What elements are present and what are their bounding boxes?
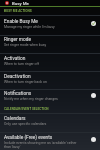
other: Busy Me: [5, 1, 9, 5]
staticText: Busy Me: [12, 1, 29, 6]
staticText: Notifications: [4, 91, 32, 97]
staticText: Ringer mode: [4, 37, 32, 43]
button[interactable]: Activation: [0, 54, 100, 72]
staticText: Activation: [4, 56, 26, 62]
staticText: Available (Free) events: [4, 135, 53, 141]
staticText: Set ringer mode when busy: [4, 43, 47, 47]
staticText: When to turn ringer back on: [4, 80, 47, 84]
staticText: CALENDAR/EVENT SELECTION: [4, 107, 49, 111]
staticText: BUSY ME ACTIONS: [4, 9, 32, 13]
button[interactable]: Deactivation: [0, 72, 100, 90]
staticText: Include events showing me as 'available'…: [4, 141, 84, 149]
staticText: Notify me when my ringer changes: [4, 97, 58, 101]
button[interactable]: Ringer mode: [0, 36, 100, 54]
button[interactable]: Busy Me: [0, 0, 100, 6]
button[interactable]: Available (Free) events: [0, 133, 100, 150]
button[interactable]: Calendars: [0, 114, 100, 133]
staticText: When to turn ringer off: [4, 62, 40, 66]
staticText: Enable Busy Me: [4, 19, 38, 25]
staticText: Deactivation: [4, 74, 31, 80]
button[interactable]: Enable Busy Me: [0, 16, 100, 36]
staticText: Only use specific calendars: [4, 122, 47, 126]
button[interactable]: Notifications: [0, 90, 100, 105]
staticText: Manage my ringer while I'm busy: [4, 25, 55, 29]
staticText: Calendars: [4, 116, 26, 122]
